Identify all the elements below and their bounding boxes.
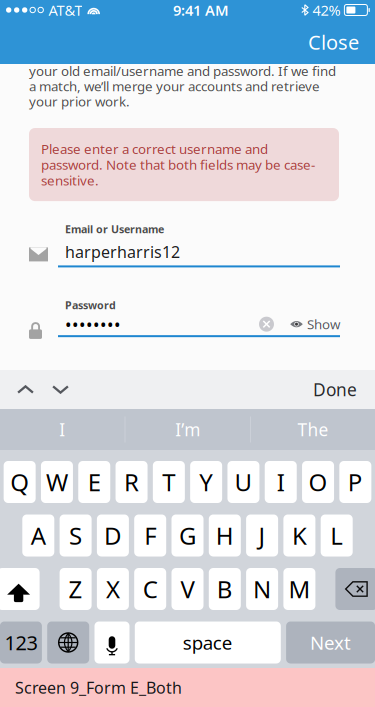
staticText: A [31, 520, 46, 551]
staticText: I [59, 418, 65, 441]
button[interactable]: A [22, 514, 54, 556]
staticText: Z [69, 573, 83, 605]
staticText: Y [199, 466, 213, 498]
button[interactable]: R [115, 461, 147, 503]
staticText: 123 [4, 629, 37, 656]
button[interactable]: Previous field [8, 371, 43, 408]
button[interactable]: X [97, 568, 129, 610]
button[interactable]: Z [60, 568, 92, 610]
staticText: Q [10, 466, 29, 498]
staticText: R [124, 466, 139, 498]
button[interactable]: F [134, 514, 166, 556]
button[interactable]: The [251, 409, 375, 450]
button[interactable]: P [339, 461, 371, 503]
button[interactable]: S [60, 514, 92, 556]
staticText: 42% [312, 0, 340, 20]
staticText: Screen 9_Form E_Both [15, 677, 182, 698]
staticText: Done [313, 378, 357, 401]
button[interactable]: U [227, 461, 259, 503]
button[interactable]: I’m [125, 409, 250, 450]
button[interactable]: N [246, 568, 278, 610]
staticText: X [106, 573, 120, 605]
staticText: Email or Username [65, 222, 164, 236]
button[interactable]: W [41, 461, 73, 503]
staticText: L [330, 520, 343, 551]
staticText: V [180, 573, 194, 605]
button[interactable]: H [209, 514, 241, 556]
button[interactable]: O [302, 461, 334, 503]
staticText: Password [65, 298, 116, 312]
button[interactable]: L [321, 514, 353, 556]
button[interactable]: J [246, 514, 278, 556]
button[interactable]: C [134, 568, 166, 610]
button[interactable]: E [78, 461, 110, 503]
staticText: harperharris12 [65, 241, 180, 262]
staticText: N [253, 573, 271, 605]
staticText: •••••••• [65, 313, 121, 336]
staticText: 9:41 AM [173, 0, 229, 20]
staticText: P [348, 466, 363, 498]
staticText: space [183, 630, 233, 655]
staticText: C [143, 573, 158, 605]
button[interactable]: V [171, 568, 203, 610]
staticText: The [297, 418, 328, 441]
button[interactable]: Next [286, 621, 375, 663]
staticText: S [69, 520, 82, 551]
staticText: Next [310, 630, 351, 655]
button[interactable]: Show [274, 315, 340, 333]
button[interactable]: T [153, 461, 185, 503]
button[interactable]: I [265, 461, 297, 503]
button[interactable]: K [283, 514, 315, 556]
staticText: J [259, 520, 266, 551]
button[interactable]: Done [301, 366, 369, 413]
button[interactable]: Clear password [259, 317, 274, 332]
button[interactable]: 123 [0, 621, 42, 663]
button[interactable]: I [0, 409, 124, 450]
staticText: F [144, 520, 156, 551]
button[interactable]: Q [4, 461, 36, 503]
staticText: I’m [175, 418, 200, 441]
button[interactable]: B [209, 568, 241, 610]
button[interactable]: Shift [0, 568, 40, 610]
button[interactable]: D [97, 514, 129, 556]
button[interactable]: Screen 9_Form E_Both [0, 668, 375, 707]
staticText: K [292, 520, 307, 551]
staticText: AT&T [48, 0, 82, 20]
staticText: D [104, 520, 122, 551]
staticText: Please enter a correct username and pass… [41, 140, 315, 189]
staticText: M [288, 573, 310, 605]
staticText: U [234, 466, 252, 498]
staticText: I [277, 466, 285, 498]
button[interactable]: Next field [43, 371, 78, 408]
staticText: Show [307, 315, 340, 333]
button[interactable]: Y [190, 461, 222, 503]
staticText: your old email/username and password. If… [29, 62, 336, 110]
staticText: O [309, 466, 328, 498]
staticText: W [46, 466, 68, 498]
staticText: Close [308, 29, 359, 55]
button[interactable]: Delete [335, 568, 375, 610]
button[interactable]: G [171, 514, 203, 556]
staticText: T [162, 466, 175, 498]
button[interactable]: space [135, 621, 281, 663]
staticText: G [179, 520, 196, 551]
staticText: B [217, 573, 233, 605]
staticText: H [216, 520, 234, 551]
button[interactable]: Close [292, 18, 375, 66]
staticText: E [88, 466, 101, 498]
button[interactable]: M [283, 568, 315, 610]
button[interactable]: Dictation [94, 621, 129, 663]
button[interactable]: Next keyboard [47, 621, 89, 663]
